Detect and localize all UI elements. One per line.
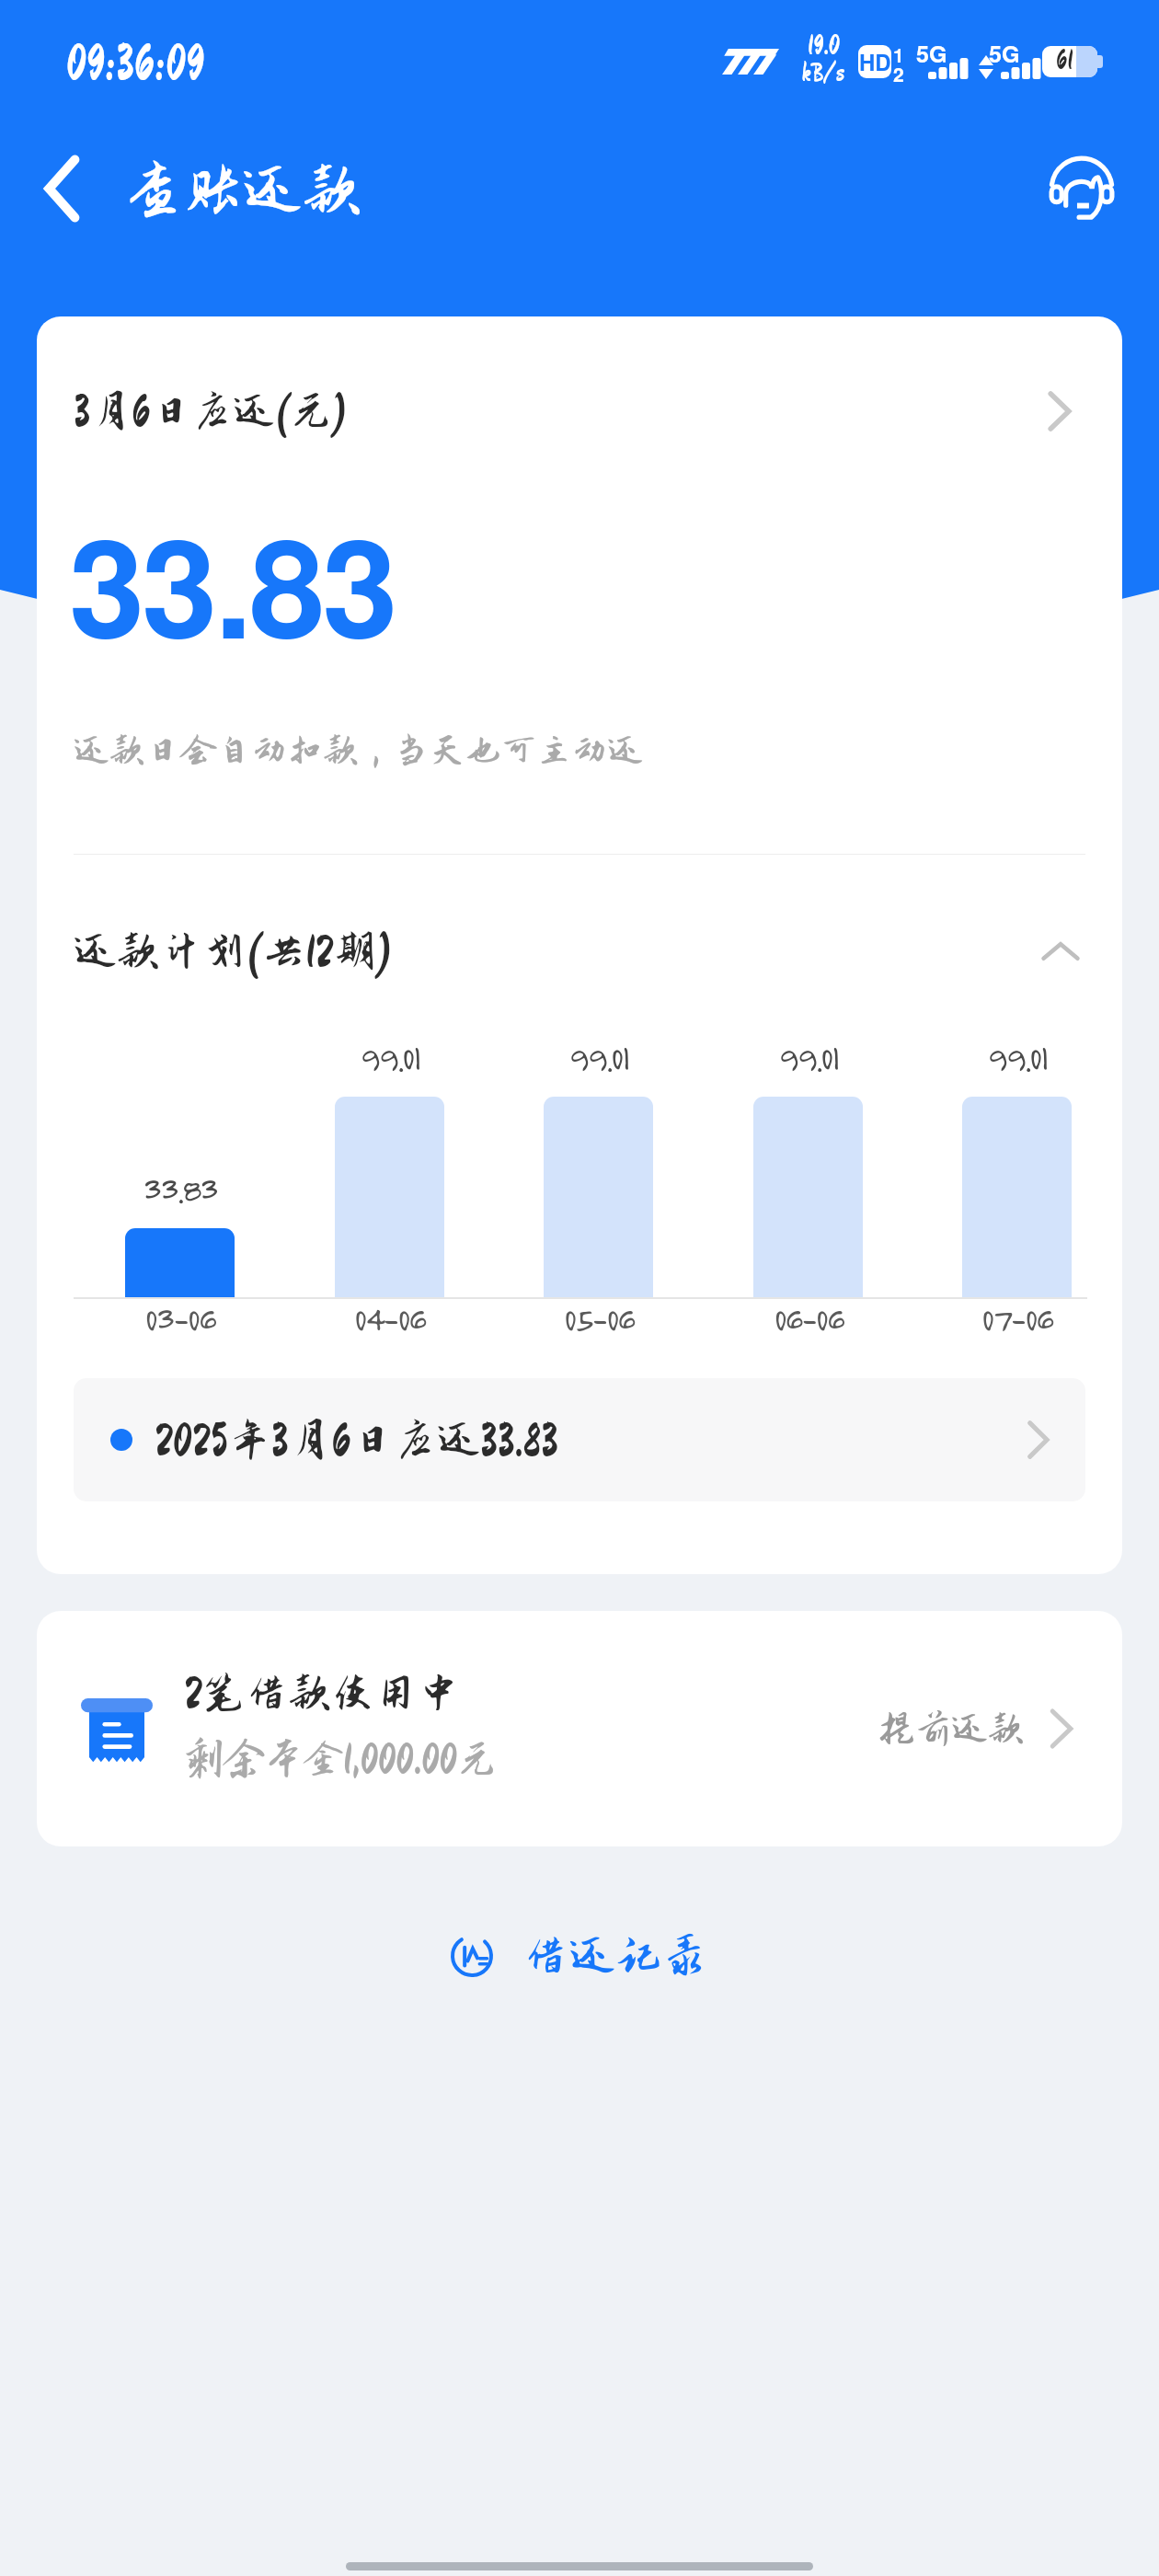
staticText: 99.01 <box>568 1036 629 1078</box>
staticText: 07-06 <box>981 1297 1052 1340</box>
button[interactable]: Customer service <box>1036 143 1128 235</box>
staticText: 还款日会自动扣款，当天也可主动还 <box>74 730 644 770</box>
button[interactable]: 2025年3月6日应还33.83 <box>74 1378 1085 1501</box>
staticText: 99.01 <box>987 1036 1048 1078</box>
staticText: 借还记录 <box>522 1930 708 1982</box>
staticText: 查账还款 <box>123 157 362 224</box>
staticText: 1 <box>893 40 904 68</box>
staticText: 剩余本金1,000.00元 <box>184 1737 498 1781</box>
staticText: 06-06 <box>774 1297 843 1340</box>
staticText: 61 <box>1056 46 1073 74</box>
staticText: 5G <box>989 37 1020 70</box>
staticText: 99.01 <box>778 1036 839 1078</box>
staticText: 09:36:09 <box>66 38 205 87</box>
staticText: HD <box>859 46 891 77</box>
staticText: 04-06 <box>354 1297 425 1340</box>
button[interactable]: Back <box>20 147 103 230</box>
staticText: 99.01 <box>360 1036 420 1078</box>
staticText: 2笔借款使用中 <box>184 1669 461 1717</box>
staticText: 33.83 <box>69 485 396 680</box>
staticText: 还款计划(共12期) <box>74 927 393 975</box>
staticText: 05-06 <box>564 1297 634 1340</box>
staticText: 3月6日应还(元) <box>74 388 348 434</box>
staticText: 03-06 <box>144 1297 215 1340</box>
staticText: 33.83 <box>143 1167 217 1210</box>
staticText: 提前还款 <box>878 1708 1025 1749</box>
button[interactable]: 借还记录 <box>0 1915 1159 1996</box>
staticText: kB/s <box>802 59 844 85</box>
staticText: 2025年3月6日应还33.83 <box>155 1416 558 1464</box>
button[interactable]: 2笔借款使用中 <box>37 1611 1122 1846</box>
staticText: 2 <box>893 60 904 87</box>
button[interactable]: 3月6日应还(元) <box>37 377 1122 445</box>
staticText: 19.0 <box>808 31 840 59</box>
button[interactable]: 还款计划(共12期) <box>37 896 1122 1006</box>
staticText: 5G <box>916 37 947 70</box>
